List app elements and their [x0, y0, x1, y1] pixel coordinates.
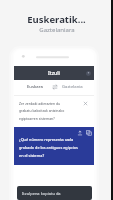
staticText: Zer zenbaki adierazten du grabatu bakoit… [19, 101, 67, 121]
staticText: Euskeratik... [27, 13, 86, 26]
button[interactable]: Euskara [19, 80, 51, 94]
staticText: Itzuli [48, 70, 60, 77]
button[interactable]: Share [77, 130, 83, 136]
button[interactable]: Account [85, 70, 91, 76]
staticText: ¿Qué número representa cada grabado de l… [19, 137, 80, 158]
staticText: Gaztelaniara [39, 26, 75, 34]
staticText: Itzulpena kopiatu da [22, 191, 61, 196]
button[interactable]: Copy [86, 130, 92, 136]
button[interactable]: Swap languages [49, 80, 61, 94]
staticText: Euskara [27, 84, 43, 90]
button[interactable]: Clear text [83, 101, 88, 106]
staticText: Gaztelania [62, 84, 83, 90]
button[interactable]: Itzulpena kopiatu da [17, 186, 92, 200]
button[interactable]: Gaztelania [57, 80, 88, 94]
